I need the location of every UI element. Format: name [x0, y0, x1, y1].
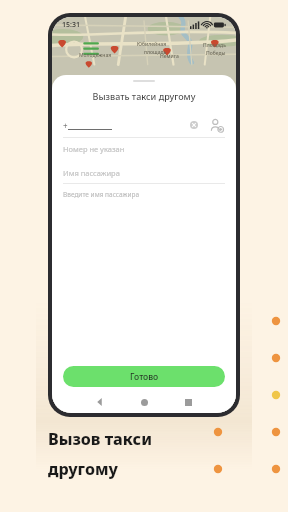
staticText: Номер не указан	[63, 144, 125, 154]
staticText: Площадь	[203, 42, 226, 49]
staticText: Победы	[206, 50, 226, 57]
staticText: площадь	[144, 49, 167, 56]
staticText: +	[63, 120, 68, 131]
staticText: Вызвать такси другому	[52, 90, 236, 102]
staticText: Вызов такси	[48, 428, 152, 450]
button[interactable]: Очистить	[187, 118, 201, 132]
staticText: Имя пассажира	[63, 168, 120, 178]
staticText: Готово	[130, 371, 159, 383]
staticText: другому	[48, 458, 118, 480]
button[interactable]: Последние приложения	[166, 394, 210, 410]
staticText: 15:31	[62, 20, 80, 30]
button[interactable]: Назад	[78, 394, 122, 410]
staticText: Юбилейная	[137, 41, 167, 48]
button[interactable]: Готово	[63, 366, 225, 387]
button[interactable]: Добавить контакт	[207, 116, 225, 134]
staticText: Введите имя пассажира	[63, 190, 140, 199]
staticText: Молодёжная	[79, 52, 112, 59]
button[interactable]: Домой	[122, 394, 166, 410]
staticText: Немига	[160, 53, 179, 60]
